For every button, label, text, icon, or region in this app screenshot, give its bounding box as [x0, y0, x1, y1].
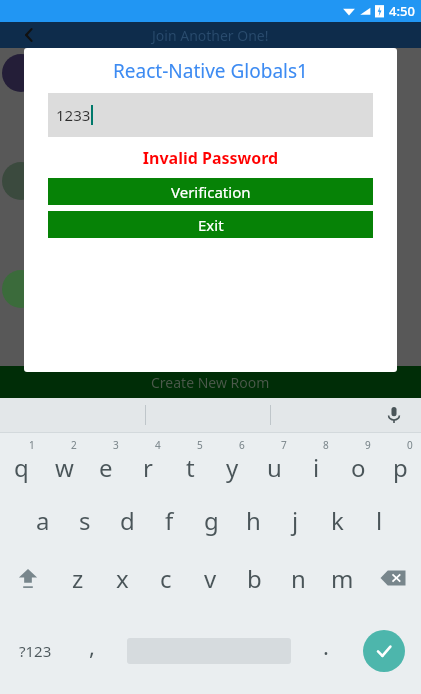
- button[interactable]: Back: [18, 24, 40, 46]
- button[interactable]: k: [316, 491, 358, 549]
- staticText: ,: [89, 631, 95, 661]
- staticText: z: [72, 562, 84, 595]
- staticText: u: [267, 451, 282, 484]
- staticText: 4: [155, 438, 161, 452]
- staticText: ?123: [19, 641, 52, 661]
- button[interactable]: .: [304, 607, 347, 694]
- staticText: v: [204, 562, 217, 595]
- staticText: f: [165, 504, 174, 537]
- button[interactable]: [113, 607, 304, 694]
- staticText: p: [393, 451, 408, 484]
- staticText: 1233: [56, 105, 91, 125]
- staticText: Join Another One!: [152, 26, 269, 45]
- button[interactable]: 5: [169, 433, 211, 491]
- staticText: 1: [29, 438, 35, 452]
- staticText: t: [186, 451, 195, 484]
- staticText: j: [292, 504, 299, 537]
- button[interactable]: j: [274, 491, 316, 549]
- button[interactable]: x: [100, 549, 144, 607]
- staticText: e: [99, 451, 113, 484]
- staticText: x: [116, 562, 129, 595]
- staticText: n: [291, 562, 306, 595]
- staticText: 5: [197, 438, 203, 452]
- button[interactable]: d: [106, 491, 148, 549]
- button[interactable]: v: [188, 549, 232, 607]
- button[interactable]: ,: [70, 607, 113, 694]
- staticText: 8: [323, 438, 329, 452]
- button[interactable]: [2, 378, 40, 416]
- staticText: g: [204, 504, 219, 537]
- button[interactable]: n: [276, 549, 320, 607]
- button[interactable]: Exit: [48, 211, 373, 238]
- staticText: r: [143, 451, 153, 484]
- button[interactable]: Backspace: [364, 549, 421, 607]
- button[interactable]: [2, 270, 40, 308]
- staticText: Verification: [171, 182, 251, 202]
- button[interactable]: 7: [253, 433, 295, 491]
- staticText: Create New Room: [151, 373, 270, 392]
- button[interactable]: Create New Room: [0, 366, 421, 398]
- button[interactable]: [2, 162, 40, 200]
- staticText: k: [331, 504, 344, 537]
- button[interactable]: l: [358, 491, 400, 549]
- button[interactable]: Voice input: [381, 402, 407, 428]
- button[interactable]: 1: [0, 433, 43, 491]
- staticText: 2: [71, 438, 77, 452]
- button[interactable]: 3: [85, 433, 127, 491]
- staticText: s: [79, 504, 91, 537]
- staticText: d: [120, 504, 135, 537]
- button[interactable]: [2, 54, 40, 92]
- button[interactable]: m: [320, 549, 364, 607]
- staticText: o: [351, 451, 366, 484]
- staticText: c: [160, 562, 172, 595]
- button[interactable]: b: [232, 549, 276, 607]
- staticText: b: [247, 562, 262, 595]
- button[interactable]: ?123: [0, 607, 70, 694]
- staticText: Exit: [198, 215, 224, 235]
- button[interactable]: 1233: [48, 93, 373, 137]
- staticText: 7: [281, 438, 287, 452]
- button[interactable]: 0: [379, 433, 421, 491]
- staticText: React-Native Globals1: [24, 58, 397, 84]
- button[interactable]: 6: [211, 433, 253, 491]
- button[interactable]: 9: [337, 433, 379, 491]
- staticText: w: [55, 451, 74, 484]
- staticText: 9: [365, 438, 371, 452]
- staticText: y: [226, 451, 239, 484]
- staticText: .: [323, 631, 329, 661]
- button[interactable]: h: [232, 491, 274, 549]
- button[interactable]: g: [190, 491, 232, 549]
- button[interactable]: f: [148, 491, 190, 549]
- button[interactable]: 2: [43, 433, 85, 491]
- button[interactable]: Verification: [48, 178, 373, 205]
- staticText: a: [36, 504, 50, 537]
- staticText: 6: [239, 438, 245, 452]
- staticText: 4:50: [389, 2, 415, 20]
- button[interactable]: z: [56, 549, 100, 607]
- staticText: h: [246, 504, 261, 537]
- button[interactable]: a: [22, 491, 64, 549]
- button[interactable]: s: [64, 491, 106, 549]
- button[interactable]: 4: [127, 433, 169, 491]
- button[interactable]: c: [144, 549, 188, 607]
- staticText: 0: [407, 438, 413, 452]
- button[interactable]: 8: [295, 433, 337, 491]
- staticText: l: [376, 504, 383, 537]
- staticText: 3: [113, 438, 119, 452]
- staticText: q: [14, 451, 29, 484]
- button[interactable]: Shift: [0, 549, 56, 607]
- staticText: Invalid Password: [24, 147, 397, 169]
- staticText: i: [313, 451, 320, 484]
- staticText: m: [331, 562, 354, 595]
- button[interactable]: Enter: [347, 607, 421, 694]
